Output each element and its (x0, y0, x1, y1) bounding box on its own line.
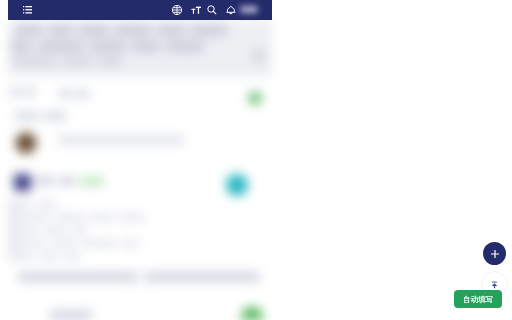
button[interactable]: Menu (19, 0, 35, 20)
button[interactable]: Scroll to top (481, 271, 508, 298)
button[interactable]: Notifications (223, 0, 239, 20)
button[interactable]: Search (204, 0, 220, 20)
staticText: 自动填写 (463, 295, 493, 304)
button[interactable]: Text size (188, 0, 204, 20)
button[interactable]: Add (483, 242, 506, 265)
button[interactable]: Language (169, 0, 185, 20)
button[interactable]: 自动填写 (454, 290, 502, 308)
button[interactable]: Account (234, 0, 266, 20)
